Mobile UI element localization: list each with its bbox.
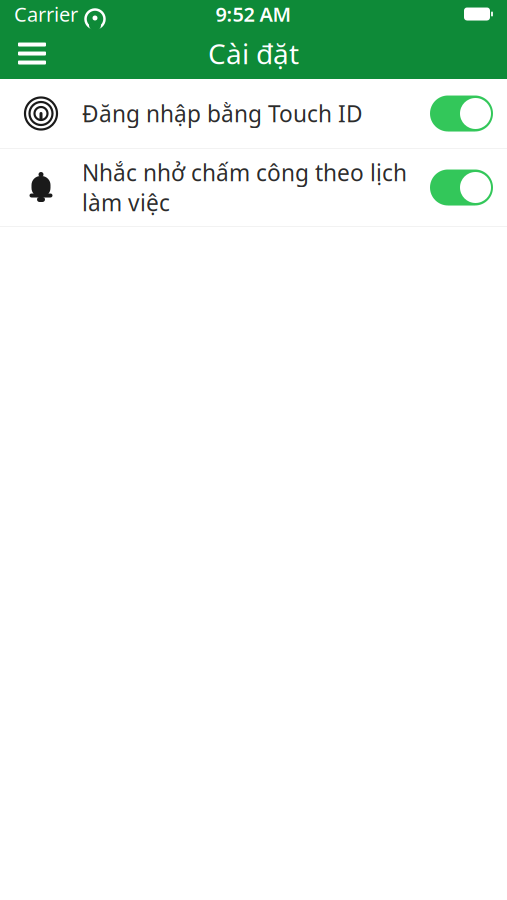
staticText: Đăng nhập bằng Touch ID bbox=[82, 98, 363, 128]
staticText: Nhắc nhở chấm công theo lịch làm việc bbox=[82, 157, 407, 218]
staticText: Cài đặt bbox=[208, 35, 299, 72]
button[interactable]: Menu bbox=[8, 31, 56, 75]
button[interactable]: Nhắc nhở chấm công theo lịch làm việc bbox=[0, 149, 507, 227]
staticText: 9:52 AM bbox=[215, 1, 291, 27]
button[interactable]: Đăng nhập bằng Touch ID bbox=[0, 79, 507, 149]
staticText: Carrier bbox=[14, 1, 78, 27]
